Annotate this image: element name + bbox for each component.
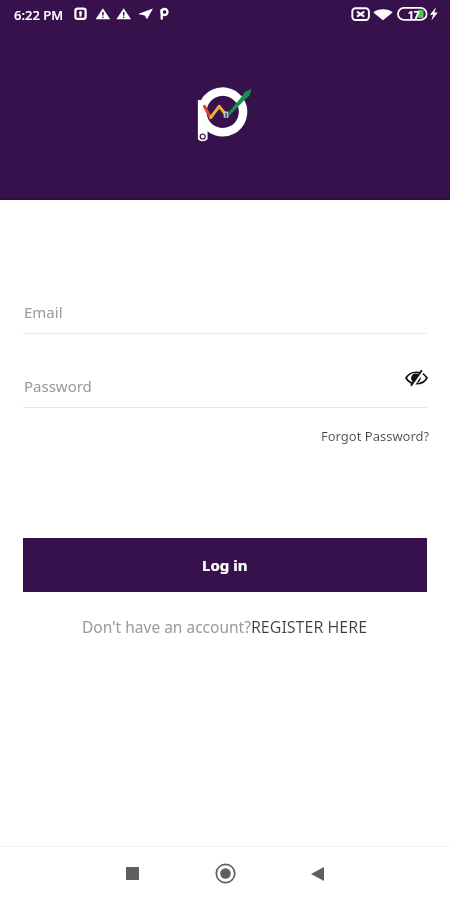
- button[interactable]: Password: [23, 370, 427, 408]
- button[interactable]: Forgot Password?: [313, 423, 438, 449]
- button[interactable]: Log in: [23, 538, 427, 592]
- staticText: Email: [24, 302, 63, 322]
- staticText: Don't have an account?REGISTER HERE: [82, 616, 368, 638]
- staticText: Password: [24, 376, 92, 396]
- button[interactable]: Email: [23, 296, 427, 334]
- staticText: Forgot Password?: [321, 427, 430, 445]
- button[interactable]: Recent apps: [110, 851, 155, 896]
- button[interactable]: Show password: [401, 363, 431, 392]
- staticText: Log in: [202, 555, 248, 575]
- button[interactable]: Don't have an account?REGISTER HERE: [76, 612, 374, 642]
- button[interactable]: Back: [295, 851, 340, 896]
- staticText: 17: [408, 8, 420, 22]
- button[interactable]: Home: [203, 851, 248, 896]
- staticText: 6:22 PM: [14, 6, 64, 24]
